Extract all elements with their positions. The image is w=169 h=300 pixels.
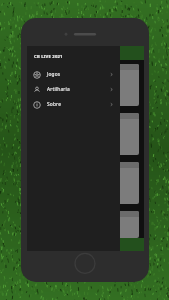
button[interactable]: Jogos	[27, 67, 120, 82]
button[interactable]: Artilharia	[27, 82, 120, 97]
button[interactable]: BOT	[32, 64, 139, 106]
button[interactable]: LUV	[32, 113, 139, 155]
button[interactable]: Sobre	[27, 97, 120, 112]
other: Jogos	[33, 71, 41, 79]
staticText: Jogos	[47, 71, 61, 78]
button[interactable]: YPI	[32, 162, 139, 204]
staticText: Artilharia	[47, 86, 70, 93]
other: Artilharia	[33, 86, 41, 94]
button[interactable]	[32, 211, 139, 238]
other: Sobre	[33, 101, 41, 109]
staticText: Sobre	[47, 101, 62, 108]
staticText: CB LIVE 2021	[34, 54, 63, 60]
